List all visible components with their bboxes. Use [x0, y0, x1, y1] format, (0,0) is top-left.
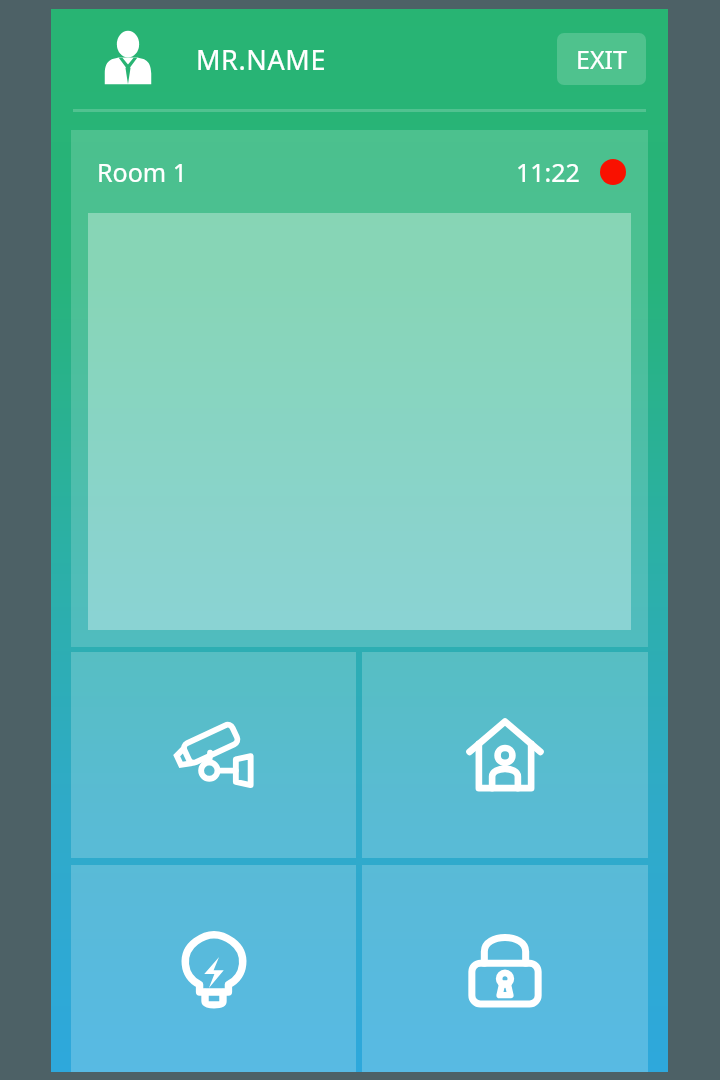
button[interactable]: Home: [362, 652, 648, 858]
button[interactable]: Profile: [95, 26, 161, 92]
staticText: 11:22: [516, 155, 580, 189]
button[interactable]: Cameras: [71, 652, 356, 858]
button[interactable]: Lights: [71, 865, 356, 1072]
staticText: Room 1: [97, 155, 187, 189]
staticText: MR.NAME: [196, 41, 326, 78]
button[interactable]: Room 1: [71, 130, 648, 647]
button[interactable]: Lock: [362, 865, 648, 1072]
staticText: EXIT: [576, 42, 627, 76]
button[interactable]: EXIT: [557, 33, 646, 85]
